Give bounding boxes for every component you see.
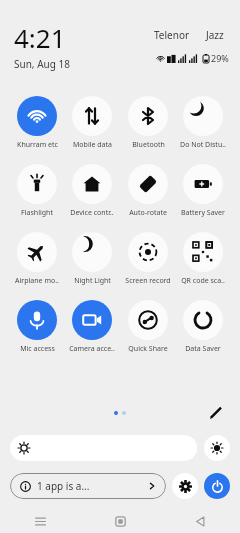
staticText: Quick Share <box>128 344 168 354</box>
button[interactable]: QR code sca.. <box>176 232 230 286</box>
button[interactable]: Mobile data <box>65 96 119 150</box>
button[interactable]: Khurram etc <box>10 96 64 150</box>
staticText: Sun, Aug 18 <box>14 57 70 71</box>
button[interactable]: Back <box>160 509 240 533</box>
staticText: Auto-rotate <box>129 208 167 218</box>
button[interactable]: Airplane mo.. <box>10 232 64 286</box>
staticText: 29% <box>211 52 229 64</box>
staticText: Battery Saver <box>181 208 225 218</box>
staticText: Bluetooth <box>132 140 165 150</box>
button[interactable]: Home <box>80 509 160 533</box>
button[interactable]: Data Saver <box>176 300 230 354</box>
staticText: Mic access <box>20 344 55 354</box>
button[interactable]: Quick Share <box>121 300 175 354</box>
staticText: QR code sca.. <box>181 276 225 286</box>
button[interactable]: Recents <box>0 509 80 533</box>
staticText: Khurram etc <box>17 140 58 150</box>
staticText: Data Saver <box>185 344 221 354</box>
button[interactable]: Flashlight <box>10 164 64 218</box>
button[interactable]: Settings <box>172 473 198 499</box>
staticText: Jazz <box>206 28 224 42</box>
staticText: Flashlight <box>21 208 53 218</box>
button[interactable]: Power <box>204 473 230 499</box>
button[interactable]: Do Not Distu.. <box>176 96 230 150</box>
staticText: 4:21 <box>14 20 66 55</box>
staticText: 1 app is a... <box>37 479 90 493</box>
staticText: Screen record <box>125 276 171 286</box>
staticText: Device contr.. <box>70 208 114 218</box>
button[interactable]: Mic access <box>10 300 64 354</box>
button[interactable]: 1 app is a... <box>10 473 166 499</box>
button[interactable]: Edit tiles <box>206 405 226 421</box>
button[interactable]: Auto brightness <box>204 435 230 461</box>
staticText: Airplane mo.. <box>15 276 59 286</box>
button[interactable]: Night Light <box>65 232 119 286</box>
button[interactable]: Brightness <box>10 435 197 461</box>
button[interactable]: Screen record <box>121 232 175 286</box>
button[interactable]: Bluetooth <box>121 96 175 150</box>
staticText: Camera acce.. <box>69 344 115 354</box>
button[interactable]: Battery Saver <box>176 164 230 218</box>
staticText: Mobile data <box>73 140 112 150</box>
staticText: Telenor <box>154 28 190 42</box>
button[interactable]: Auto-rotate <box>121 164 175 218</box>
staticText: Night Light <box>74 276 111 286</box>
button[interactable]: Camera acce.. <box>65 300 119 354</box>
button[interactable]: Device contr.. <box>65 164 119 218</box>
staticText: Do Not Distu.. <box>180 140 226 150</box>
